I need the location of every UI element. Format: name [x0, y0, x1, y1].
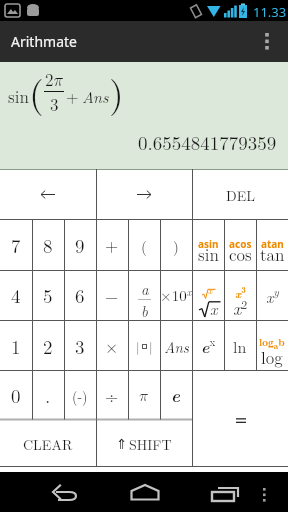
- staticText: 3: [50, 92, 59, 116]
- staticText: ex: [201, 334, 216, 358]
- staticText: sin: [8, 84, 29, 108]
- staticText: x3: [235, 284, 246, 298]
- button[interactable]: 1: [0, 321, 32, 371]
- staticText: ln: [233, 335, 247, 358]
- staticText: atan: [261, 237, 284, 249]
- button[interactable]: ): [160, 220, 192, 270]
- staticText: SHIFT: [129, 434, 172, 454]
- staticText: 4: [11, 282, 21, 309]
- button[interactable]: [192, 371, 288, 467]
- button[interactable]: 9: [64, 220, 96, 270]
- button[interactable]: ln: [224, 321, 256, 371]
- button[interactable]: ex: [192, 321, 224, 371]
- button[interactable]: 2: [32, 321, 64, 371]
- button[interactable]: [0, 169, 96, 220]
- staticText: tan: [260, 242, 285, 266]
- button[interactable]: [224, 220, 256, 270]
- staticText: acos: [229, 237, 252, 249]
- button[interactable]: (: [128, 220, 160, 270]
- button[interactable]: 4: [0, 270, 32, 321]
- button[interactable]: [252, 21, 288, 62]
- button[interactable]: [0, 472, 96, 512]
- button[interactable]: ÷: [96, 371, 128, 420]
- staticText: Ans: [82, 85, 109, 108]
- button[interactable]: 7: [0, 220, 32, 270]
- staticText: Ans: [164, 336, 189, 357]
- staticText: +: [66, 85, 79, 108]
- button[interactable]: .: [32, 371, 64, 420]
- button[interactable]: [96, 169, 192, 220]
- staticText: 7: [11, 232, 21, 259]
- button[interactable]: ×10x: [160, 270, 192, 321]
- staticText: logab: [259, 335, 285, 349]
- button[interactable]: e: [160, 371, 192, 420]
- button[interactable]: [192, 220, 224, 270]
- staticText: −: [105, 284, 119, 308]
- staticText: x: [210, 297, 218, 320]
- staticText: 2𝜋: [45, 67, 64, 91]
- staticText: 1: [11, 333, 21, 360]
- button[interactable]: |: [128, 321, 160, 371]
- button[interactable]: ⇑: [96, 420, 192, 467]
- button[interactable]: 8: [32, 220, 64, 270]
- button[interactable]: Ans: [160, 321, 192, 371]
- staticText: x2: [233, 295, 248, 319]
- button[interactable]: DEL: [192, 169, 288, 220]
- staticText: 0.6554841779359: [138, 129, 277, 156]
- staticText: (-): [72, 386, 88, 406]
- staticText: e: [171, 383, 181, 408]
- button[interactable]: CLEAR: [0, 420, 96, 467]
- staticText: Arithmate: [11, 32, 77, 51]
- staticText: 8: [43, 232, 53, 259]
- staticText: (: [29, 64, 44, 118]
- button[interactable]: [192, 270, 224, 321]
- staticText: sin: [198, 242, 219, 266]
- button[interactable]: 6: [64, 270, 96, 321]
- button[interactable]: −: [96, 270, 128, 321]
- staticText: 𝜋: [139, 388, 149, 404]
- staticText: a: [141, 278, 149, 299]
- staticText: cos: [229, 242, 252, 266]
- staticText: log: [261, 345, 283, 369]
- button[interactable]: (-): [64, 371, 96, 420]
- button[interactable]: [192, 472, 288, 512]
- staticText: asin: [198, 237, 219, 249]
- staticText: +: [105, 233, 119, 257]
- button[interactable]: xy: [256, 270, 288, 321]
- button[interactable]: a: [128, 270, 160, 321]
- staticText: ): [109, 64, 124, 118]
- button[interactable]: [256, 220, 288, 270]
- button[interactable]: [256, 321, 288, 371]
- staticText: (: [141, 235, 147, 256]
- staticText: b: [141, 300, 148, 321]
- staticText: 3: [75, 333, 85, 360]
- staticText: |: [149, 337, 153, 355]
- button[interactable]: 0: [0, 371, 32, 420]
- staticText: 11.33: [253, 3, 287, 21]
- button[interactable]: 3: [64, 321, 96, 371]
- staticText: x: [208, 284, 213, 297]
- staticText: |: [136, 337, 140, 355]
- button[interactable]: +: [96, 220, 128, 270]
- button[interactable]: [224, 270, 256, 321]
- button[interactable]: [96, 472, 192, 512]
- staticText: ×: [105, 334, 119, 358]
- staticText: ÷: [105, 384, 119, 408]
- staticText: ×10x: [160, 284, 192, 305]
- staticText: 6: [75, 282, 85, 309]
- staticText: .: [45, 382, 51, 409]
- staticText: xy: [266, 284, 279, 307]
- staticText: 0: [11, 382, 21, 409]
- staticText: 9: [75, 232, 85, 259]
- button[interactable]: ×: [96, 321, 128, 371]
- staticText: ): [173, 235, 179, 256]
- staticText: DEL: [226, 185, 255, 205]
- staticText: CLEAR: [23, 434, 73, 454]
- staticText: 5: [43, 282, 53, 309]
- button[interactable]: 𝜋: [128, 371, 160, 420]
- button[interactable]: 5: [32, 270, 64, 321]
- staticText: 2: [43, 333, 53, 360]
- staticText: ⇑: [116, 436, 128, 452]
